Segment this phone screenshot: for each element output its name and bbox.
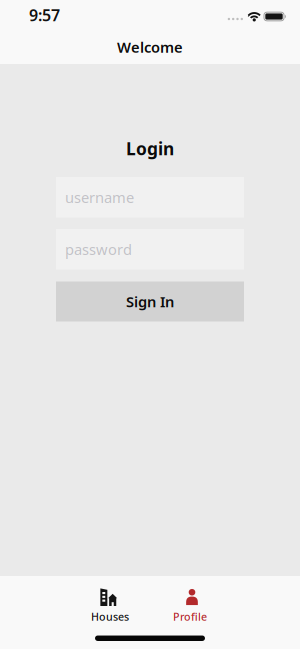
staticText: Profile (173, 609, 207, 624)
secureTextField[interactable]: password (56, 229, 244, 269)
button[interactable]: Houses (78, 588, 142, 624)
staticText: Sign In (126, 292, 174, 311)
staticText: Welcome (117, 37, 183, 57)
button[interactable]: Profile (158, 588, 222, 624)
button[interactable]: Sign In (56, 281, 244, 321)
staticText: 9:57 (29, 4, 60, 26)
textField[interactable]: username (56, 177, 244, 217)
staticText: password (65, 239, 132, 259)
staticText: Houses (91, 609, 129, 624)
staticText: username (65, 187, 134, 207)
staticText: Login (126, 137, 174, 160)
